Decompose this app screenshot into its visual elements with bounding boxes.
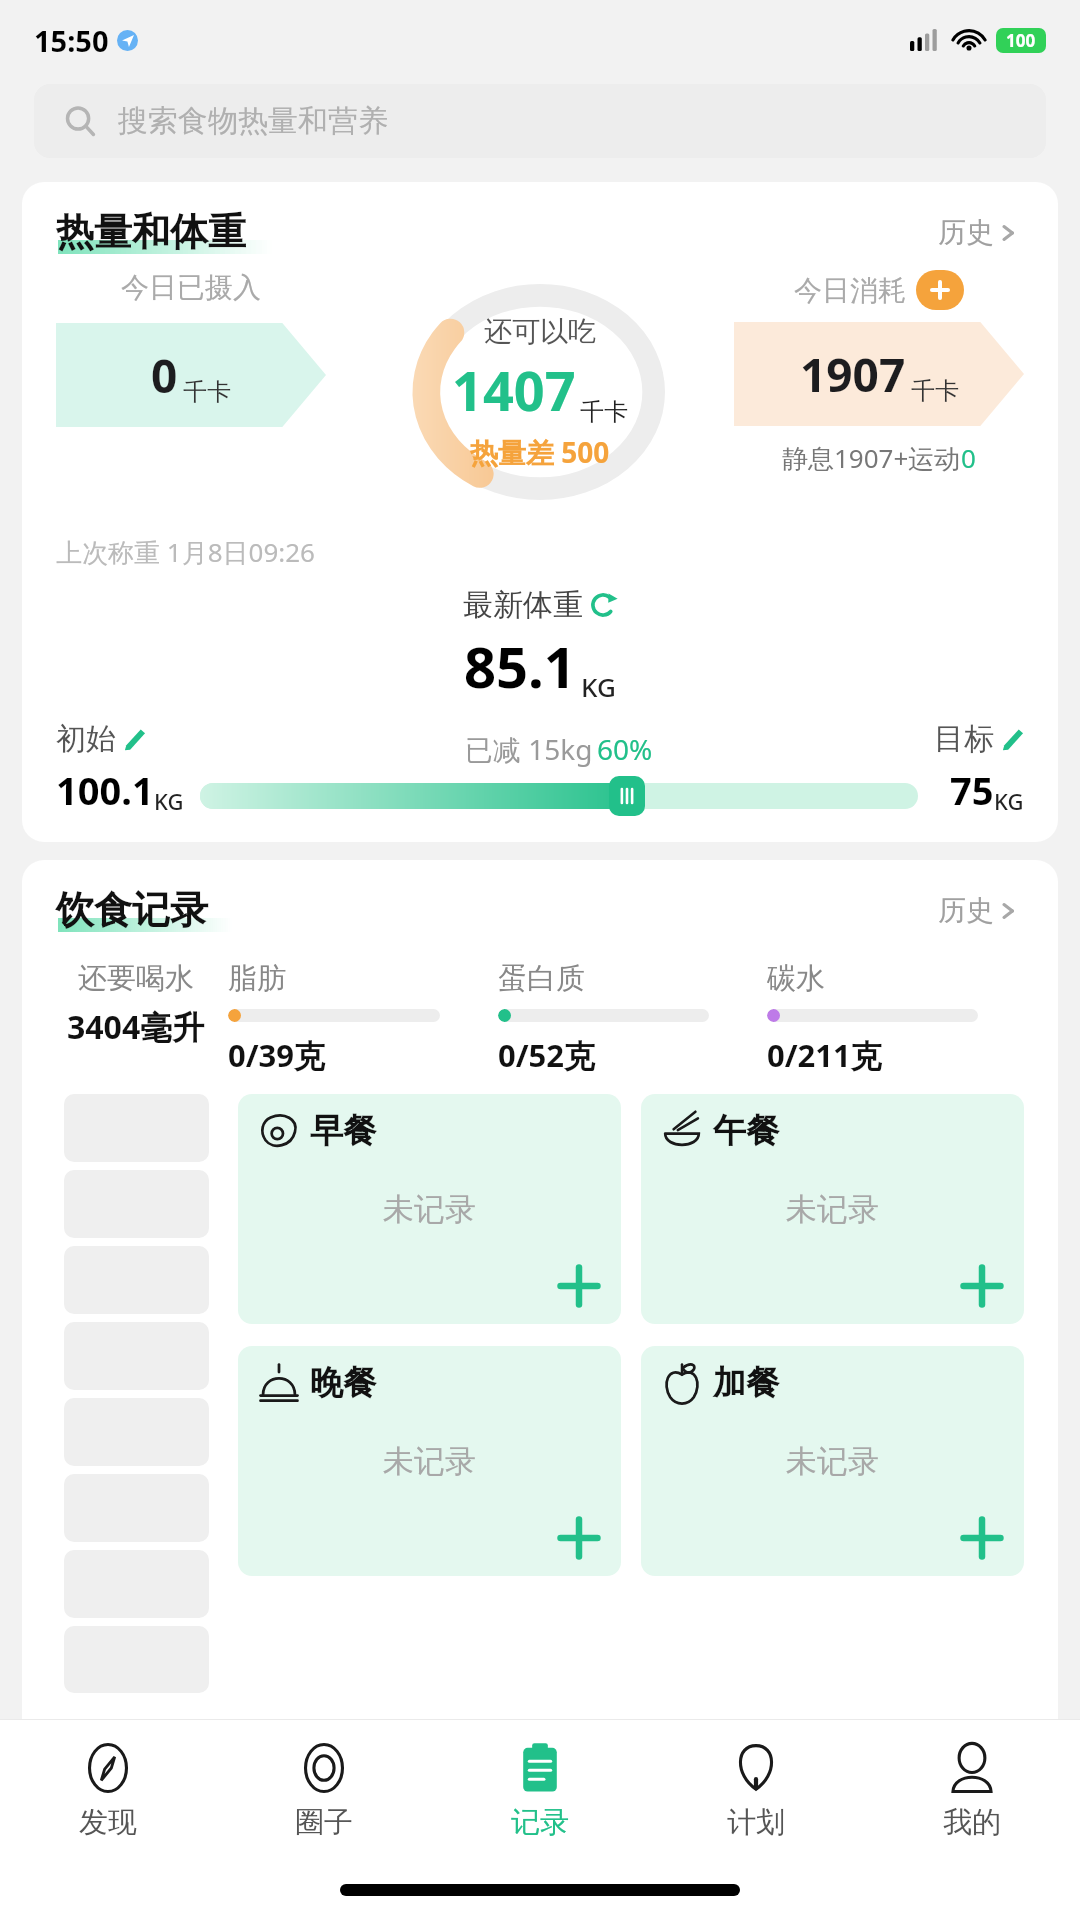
button[interactable]: 历史 bbox=[932, 209, 1024, 256]
button[interactable]: 0 bbox=[56, 323, 326, 427]
button[interactable]: 刷新体重 bbox=[589, 591, 617, 619]
staticText: 记录 bbox=[511, 1804, 569, 1841]
button[interactable]: 加餐 bbox=[641, 1346, 1024, 1576]
button[interactable]: 午餐 bbox=[641, 1094, 1024, 1324]
staticText: 85.1 bbox=[464, 628, 576, 704]
staticText: 0/211克 bbox=[767, 1034, 882, 1076]
staticText: 计划 bbox=[727, 1804, 785, 1841]
staticText: KG bbox=[994, 786, 1024, 816]
staticText: 千卡 bbox=[580, 397, 628, 427]
staticText: 最新体重 bbox=[463, 586, 583, 624]
button[interactable]: 添加晚餐 bbox=[557, 1516, 601, 1560]
staticText: 饮食记录 bbox=[56, 886, 208, 934]
staticText: 还要喝水 bbox=[78, 960, 194, 997]
staticText: 0 bbox=[151, 344, 178, 407]
staticText: 3404毫升 bbox=[67, 1005, 205, 1049]
staticText: 晚餐 bbox=[310, 1362, 376, 1404]
staticText: 还可以吃 bbox=[484, 314, 596, 349]
staticText: 100.1 bbox=[56, 764, 154, 816]
staticText: 100 bbox=[1006, 29, 1036, 52]
staticText: 1407 bbox=[452, 353, 576, 427]
staticText: 脂肪 bbox=[228, 960, 286, 997]
button[interactable]: 目标 bbox=[934, 720, 1024, 758]
button[interactable]: 发现 bbox=[0, 1720, 216, 1860]
staticText: 今日消耗 bbox=[794, 273, 906, 308]
staticText: 热量和体重 bbox=[56, 208, 246, 256]
staticText: 千卡 bbox=[911, 376, 959, 406]
staticText: 搜索食物热量和营养 bbox=[118, 102, 388, 140]
button[interactable]: 记录 bbox=[432, 1720, 648, 1860]
staticText: 千卡 bbox=[183, 377, 231, 407]
button[interactable]: 早餐 bbox=[238, 1094, 621, 1324]
staticText: 上次称重 1月8日09:26 bbox=[56, 534, 315, 570]
staticText: 15:50 bbox=[34, 21, 109, 60]
button[interactable]: 添加午餐 bbox=[960, 1264, 1004, 1308]
staticText: 已减 15kg bbox=[465, 730, 593, 768]
button[interactable]: 计划 bbox=[648, 1720, 864, 1860]
staticText: 0/39克 bbox=[228, 1034, 326, 1076]
staticText: 历史 bbox=[938, 893, 994, 928]
staticText: 早餐 bbox=[310, 1110, 376, 1152]
staticText: 我的 bbox=[943, 1804, 1001, 1841]
staticText: 未记录 bbox=[786, 1442, 879, 1481]
staticText: KG bbox=[581, 669, 616, 704]
button[interactable]: 我的 bbox=[864, 1720, 1080, 1860]
button[interactable]: 历史 bbox=[932, 887, 1024, 934]
staticText: 午餐 bbox=[713, 1110, 779, 1152]
button[interactable]: 1907 bbox=[734, 322, 1024, 426]
staticText: 热量差 500 bbox=[470, 433, 610, 471]
staticText: 60% bbox=[597, 730, 653, 768]
staticText: 今日已摄入 bbox=[121, 270, 261, 305]
staticText: 0 bbox=[961, 440, 976, 475]
staticText: 未记录 bbox=[383, 1190, 476, 1229]
button[interactable]: 初始 bbox=[56, 720, 146, 758]
staticText: 未记录 bbox=[786, 1190, 879, 1229]
staticText: 1907 bbox=[800, 343, 906, 406]
button[interactable]: 搜索食物热量和营养 bbox=[34, 84, 1046, 158]
staticText: KG bbox=[154, 786, 184, 816]
staticText: 初始 bbox=[56, 720, 116, 758]
staticText: 0/52克 bbox=[498, 1034, 596, 1076]
button[interactable]: 添加加餐 bbox=[960, 1516, 1004, 1560]
button[interactable]: 添加早餐 bbox=[557, 1264, 601, 1308]
button[interactable]: 圈子 bbox=[216, 1720, 432, 1860]
staticText: 蛋白质 bbox=[498, 960, 585, 997]
button[interactable]: 晚餐 bbox=[238, 1346, 621, 1576]
staticText: 未记录 bbox=[383, 1442, 476, 1481]
staticText: 75 bbox=[950, 764, 994, 816]
staticText: 发现 bbox=[79, 1804, 137, 1841]
staticText: 历史 bbox=[938, 215, 994, 250]
staticText: 圈子 bbox=[295, 1804, 353, 1841]
button[interactable]: 添加消耗 bbox=[916, 270, 964, 310]
button[interactable]: 进度滑块 bbox=[609, 776, 645, 816]
staticText: 静息1907+运动 bbox=[782, 440, 961, 476]
staticText: 加餐 bbox=[713, 1362, 779, 1404]
staticText: 碳水 bbox=[767, 960, 825, 997]
staticText: 目标 bbox=[934, 720, 994, 758]
